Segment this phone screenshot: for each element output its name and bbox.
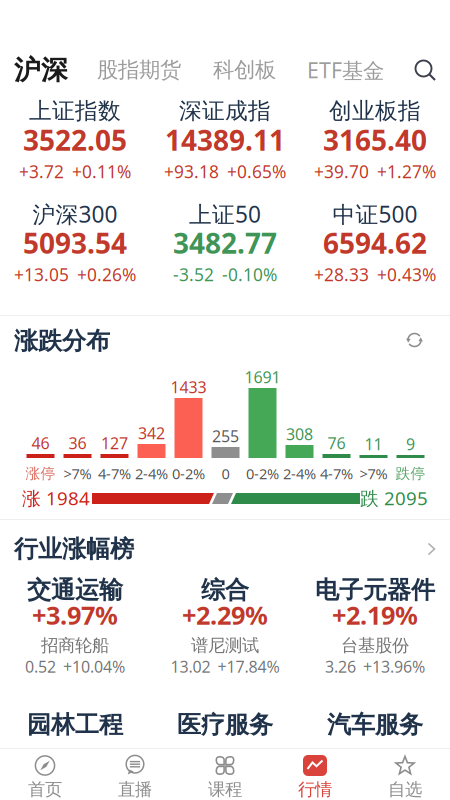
staticText: 谱尼测试: [191, 635, 259, 656]
staticText: -3.52: [173, 263, 214, 286]
button[interactable]: 行情: [270, 749, 360, 800]
staticText: 行业涨幅榜: [14, 534, 134, 564]
staticText: 科创板: [213, 57, 276, 83]
button[interactable]: 园林工程: [0, 710, 150, 739]
staticText: 3.26: [325, 656, 356, 677]
button[interactable]: 沪深: [14, 54, 68, 86]
staticText: 中证500: [332, 199, 417, 229]
staticText: 自选: [388, 779, 422, 800]
staticText: 9: [406, 433, 415, 455]
staticText: +17.84%: [217, 656, 279, 677]
button[interactable]: 综合: [150, 578, 300, 674]
staticText: +28.33: [314, 263, 369, 286]
staticText: +1.27%: [377, 160, 436, 183]
staticText: >7%: [63, 464, 91, 483]
staticText: 上证50: [189, 199, 261, 229]
staticText: 5093.54: [23, 224, 127, 262]
staticText: 沪深: [14, 54, 68, 86]
staticText: 深证成指: [179, 97, 271, 125]
staticText: 汽车服务: [327, 710, 423, 739]
staticText: 综合: [201, 575, 249, 605]
button[interactable]: 课程: [180, 749, 270, 800]
staticText: +13.96%: [363, 656, 425, 677]
staticText: 课程: [208, 779, 242, 800]
staticText: +0.26%: [77, 263, 136, 286]
button[interactable]: 交通运输: [0, 578, 150, 674]
button[interactable]: 电子元器件: [300, 578, 450, 674]
staticText: 跌 2095: [360, 486, 428, 510]
staticText: -0.10%: [222, 263, 277, 286]
staticText: 255: [212, 425, 239, 447]
staticText: 创业板指: [329, 97, 421, 125]
button[interactable]: 深证成指: [150, 100, 300, 179]
button[interactable]: 直播: [90, 749, 180, 800]
staticText: 医疗服务: [177, 710, 273, 739]
staticText: +10.04%: [63, 656, 125, 677]
staticText: +0.43%: [377, 263, 436, 286]
staticText: +3.72: [19, 160, 64, 183]
staticText: 上证指数: [29, 97, 121, 125]
staticText: +13.05: [14, 263, 69, 286]
staticText: +93.18: [164, 160, 219, 183]
button[interactable]: 股指期货: [97, 57, 181, 83]
staticText: 0-2%: [172, 464, 205, 483]
button[interactable]: 自选: [360, 749, 450, 800]
staticText: 3522.05: [23, 121, 127, 159]
staticText: 涨跌分布: [14, 326, 110, 356]
staticText: +2.29%: [182, 598, 268, 632]
button[interactable]: 汽车服务: [300, 710, 450, 739]
button[interactable]: 医疗服务: [150, 710, 300, 739]
staticText: 电子元器件: [315, 575, 435, 605]
staticText: 0.52: [25, 656, 56, 677]
staticText: 2-4%: [135, 464, 168, 483]
staticText: 涨停: [25, 464, 55, 482]
staticText: 行情: [298, 779, 332, 800]
staticText: 跌停: [395, 464, 425, 482]
button[interactable]: 上证50: [150, 203, 300, 282]
staticText: 6594.62: [323, 224, 427, 262]
staticText: 涨 1984: [22, 486, 90, 510]
staticText: 3482.77: [173, 224, 277, 262]
button[interactable]: 科创板: [213, 57, 276, 83]
button[interactable]: 行业涨幅榜: [0, 520, 450, 578]
button[interactable]: 上证指数: [0, 100, 150, 179]
staticText: 308: [286, 423, 313, 445]
staticText: 46: [31, 432, 49, 454]
staticText: +3.97%: [32, 598, 118, 632]
staticText: 4-7%: [320, 464, 353, 483]
staticText: 1433: [170, 376, 206, 398]
button[interactable]: 沪深300: [0, 203, 150, 282]
staticText: 11: [364, 433, 382, 455]
staticText: 4-7%: [98, 464, 131, 483]
staticText: 股指期货: [97, 57, 181, 83]
staticText: 直播: [118, 779, 152, 800]
button[interactable]: 中证500: [300, 203, 450, 282]
staticText: +0.65%: [227, 160, 286, 183]
staticText: 招商轮船: [41, 635, 109, 656]
staticText: 首页: [28, 779, 62, 800]
button[interactable]: 首页: [0, 749, 90, 800]
staticText: 1691: [244, 366, 280, 388]
staticText: +0.11%: [72, 160, 131, 183]
button[interactable]: 创业板指: [300, 100, 450, 179]
staticText: 2-4%: [283, 464, 316, 483]
staticText: 14389.11: [165, 121, 285, 159]
button[interactable]: Search: [414, 59, 436, 81]
staticText: 0: [221, 464, 229, 483]
staticText: 交通运输: [27, 575, 123, 605]
staticText: >7%: [359, 464, 387, 483]
staticText: 0-2%: [246, 464, 279, 483]
staticText: 13.02: [170, 656, 210, 677]
staticText: 342: [138, 422, 165, 444]
staticText: 76: [327, 432, 345, 454]
staticText: 36: [68, 432, 86, 454]
button[interactable]: ETF基金: [307, 56, 384, 84]
staticText: +39.70: [314, 160, 369, 183]
staticText: +2.19%: [332, 598, 418, 632]
staticText: 沪深300: [32, 199, 117, 229]
staticText: 台基股份: [341, 635, 409, 656]
button[interactable]: Refresh: [406, 331, 436, 350]
staticText: ETF基金: [307, 56, 384, 84]
staticText: 127: [101, 432, 128, 454]
staticText: 园林工程: [27, 710, 123, 739]
